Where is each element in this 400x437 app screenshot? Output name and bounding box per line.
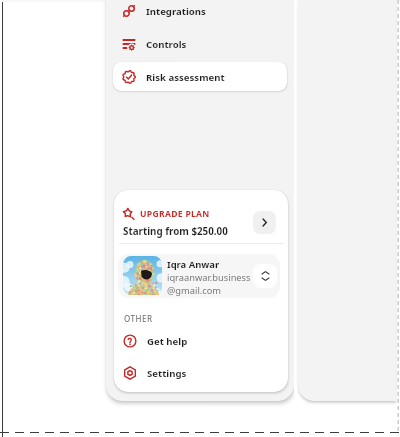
staticText: Iqra Anwar bbox=[167, 258, 220, 271]
button[interactable]: Controls bbox=[113, 30, 287, 58]
staticText: Starting from $250.00 bbox=[123, 225, 228, 238]
button[interactable]: Get help bbox=[114, 327, 288, 355]
button[interactable]: Risk assessment bbox=[113, 63, 287, 91]
staticText: Risk assessment bbox=[146, 71, 225, 84]
button[interactable]: Integrations bbox=[113, 0, 287, 25]
staticText: OTHER bbox=[124, 313, 153, 324]
staticText: iqraanwar.business bbox=[167, 271, 251, 284]
staticText: Settings bbox=[147, 367, 187, 380]
staticText: @gmail.com bbox=[167, 284, 222, 297]
button[interactable]: Switch account bbox=[253, 264, 277, 288]
staticText: Controls bbox=[146, 38, 187, 51]
button[interactable]: Iqra Anwar bbox=[118, 254, 280, 298]
staticText: UPGRADE PLAN bbox=[140, 208, 210, 220]
button[interactable]: Upgrade plan bbox=[253, 211, 276, 234]
staticText: Get help bbox=[147, 335, 188, 348]
button[interactable]: Settings bbox=[114, 359, 288, 387]
staticText: Integrations bbox=[146, 5, 206, 18]
